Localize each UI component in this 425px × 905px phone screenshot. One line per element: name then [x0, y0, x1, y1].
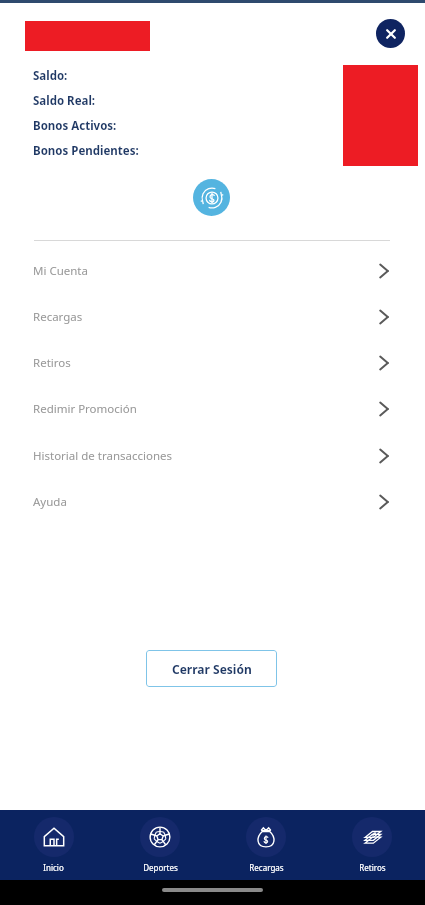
- button[interactable]: Ayuda: [0, 479, 425, 525]
- staticText: Deportes: [143, 862, 178, 873]
- staticText: Inicio: [43, 862, 64, 873]
- button[interactable]: Recargas: [0, 294, 425, 340]
- staticText: Retiros: [359, 862, 386, 873]
- button[interactable]: Cerrar Sesión: [146, 650, 277, 687]
- button[interactable]: Deportes: [107, 817, 213, 873]
- staticText: Recargas: [33, 309, 83, 325]
- staticText: Mi Cuenta: [33, 263, 88, 279]
- button[interactable]: Inicio: [0, 817, 107, 873]
- button[interactable]: Retiros: [319, 817, 425, 873]
- staticText: Retiros: [33, 355, 71, 371]
- button[interactable]: Historial de transacciones: [0, 433, 425, 479]
- staticText: Recargas: [249, 862, 284, 873]
- staticText: Saldo:: [33, 68, 68, 84]
- button[interactable]: Cerrar: [376, 19, 405, 48]
- staticText: Saldo Real:: [33, 93, 96, 109]
- staticText: Historial de transacciones: [33, 448, 173, 464]
- button[interactable]: Retiros: [0, 340, 425, 386]
- button[interactable]: Recargas: [213, 817, 319, 873]
- staticText: Redimir Promoción: [33, 401, 137, 417]
- staticText: Ayuda: [33, 494, 67, 510]
- button[interactable]: Actualizar saldo: [193, 179, 230, 216]
- button[interactable]: Redimir Promoción: [0, 386, 425, 432]
- staticText: Bonos Pendientes:: [33, 143, 139, 159]
- staticText: Bonos Activos:: [33, 118, 117, 134]
- button[interactable]: Mi Cuenta: [0, 248, 425, 294]
- staticText: Cerrar Sesión: [172, 661, 252, 677]
